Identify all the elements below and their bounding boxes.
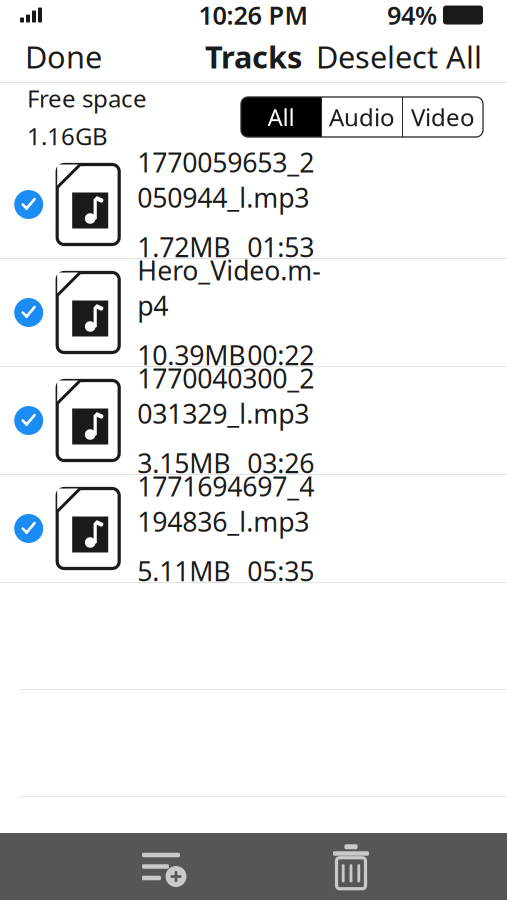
staticText: 1771694697_4194836_l.mp3 <box>137 468 314 539</box>
staticText: Deselect All <box>316 36 482 77</box>
button[interactable]: Add to playlist <box>132 836 196 896</box>
button[interactable]: Done <box>21 28 106 85</box>
button[interactable]: Hero_Video.mp4 <box>0 259 507 367</box>
button[interactable]: Video <box>403 97 483 137</box>
staticText: 00:22 <box>247 337 314 373</box>
staticText: Done <box>25 36 102 77</box>
staticText: 94% <box>387 0 437 32</box>
staticText: 1.72MB <box>137 229 230 265</box>
staticText: 1.16GB <box>27 120 108 152</box>
button[interactable]: All <box>241 97 321 137</box>
staticText: 10.39MB <box>137 337 245 373</box>
staticText: All <box>267 101 294 133</box>
button[interactable]: Deselect All <box>312 28 486 85</box>
staticText: 03:26 <box>247 445 314 481</box>
staticText: 1770040300_2031329_l.mp3 <box>137 360 314 431</box>
button[interactable]: 1770059653_2050944_l.mp3 <box>0 151 507 259</box>
staticText: 5.11MB <box>137 553 230 589</box>
staticText: Video <box>411 101 475 133</box>
button[interactable]: 1771694697_4194836_l.mp3 <box>0 475 507 583</box>
staticText: 05:35 <box>247 553 314 589</box>
staticText: 1770059653_2050944_l.mp3 <box>137 144 314 215</box>
button[interactable]: Delete <box>319 836 383 896</box>
staticText: Audio <box>329 101 395 133</box>
button[interactable]: Audio <box>322 97 402 137</box>
staticText: 01:53 <box>247 229 314 265</box>
staticText: 3.15MB <box>137 445 230 481</box>
staticText: Hero_Video.mp4 <box>137 252 321 323</box>
staticText: Tracks <box>205 36 302 77</box>
staticText: Free space <box>27 82 147 114</box>
button[interactable]: 1770040300_2031329_l.mp3 <box>0 367 507 475</box>
staticText: 10:26 PM <box>198 0 308 32</box>
